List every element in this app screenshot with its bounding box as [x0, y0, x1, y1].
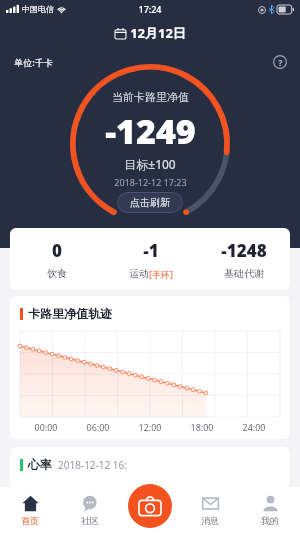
- button[interactable]: 单位:千卡: [10, 52, 57, 72]
- staticText: 12月12日: [130, 24, 186, 42]
- staticText: 2018-12-12 17:23: [114, 176, 187, 188]
- staticText: 点击刷新: [130, 196, 170, 209]
- button[interactable]: -1248: [197, 228, 290, 290]
- staticText: 17:24: [138, 3, 162, 15]
- staticText: 单位:千卡: [14, 56, 53, 68]
- button[interactable]: 我的: [240, 487, 300, 533]
- staticText: 社区: [81, 515, 99, 526]
- button[interactable]: AI识菜: [137, 503, 164, 515]
- staticText: -1248: [221, 239, 267, 262]
- button[interactable]: 帮助: [270, 52, 290, 72]
- button[interactable]: 12月12日: [109, 22, 192, 44]
- staticText: -1: [143, 239, 159, 262]
- staticText: AI识菜: [137, 503, 164, 515]
- staticText: 运动: [129, 267, 149, 280]
- button[interactable]: 点击刷新: [117, 192, 183, 213]
- button[interactable]: AI识菜 拍照: [128, 484, 172, 528]
- staticText: 基础代谢: [224, 267, 264, 280]
- button[interactable]: 0: [10, 228, 104, 290]
- staticText: 0: [52, 239, 62, 262]
- staticText: 中国电信: [22, 4, 54, 14]
- button[interactable]: 社区: [60, 487, 120, 533]
- button[interactable]: 首页: [0, 487, 60, 533]
- staticText: 心率: [28, 457, 52, 472]
- staticText: 我的: [261, 515, 279, 526]
- staticText: 当前卡路里净值: [112, 90, 189, 104]
- staticText: 卡路里净值轨迹: [28, 306, 112, 321]
- button[interactable]: 心率: [10, 447, 290, 488]
- staticText: 饮食: [47, 267, 67, 280]
- staticText: 首页: [21, 515, 39, 526]
- staticText: 消息: [201, 515, 219, 526]
- staticText: 12:00: [138, 421, 162, 433]
- staticText: ?: [278, 56, 283, 68]
- staticText: 06:00: [86, 421, 110, 433]
- staticText: 2018-12-12 16:: [58, 458, 127, 472]
- staticText: 目标±100: [124, 156, 176, 172]
- button[interactable]: 消息: [180, 487, 240, 533]
- staticText: 00:00: [34, 421, 58, 433]
- staticText: -1249: [105, 108, 196, 154]
- staticText: 24:00: [242, 421, 266, 433]
- button[interactable]: -1: [104, 228, 197, 290]
- staticText: [手环]: [149, 268, 173, 280]
- button[interactable]: 卡路里净值轨迹: [10, 296, 290, 439]
- staticText: 18:00: [190, 421, 214, 433]
